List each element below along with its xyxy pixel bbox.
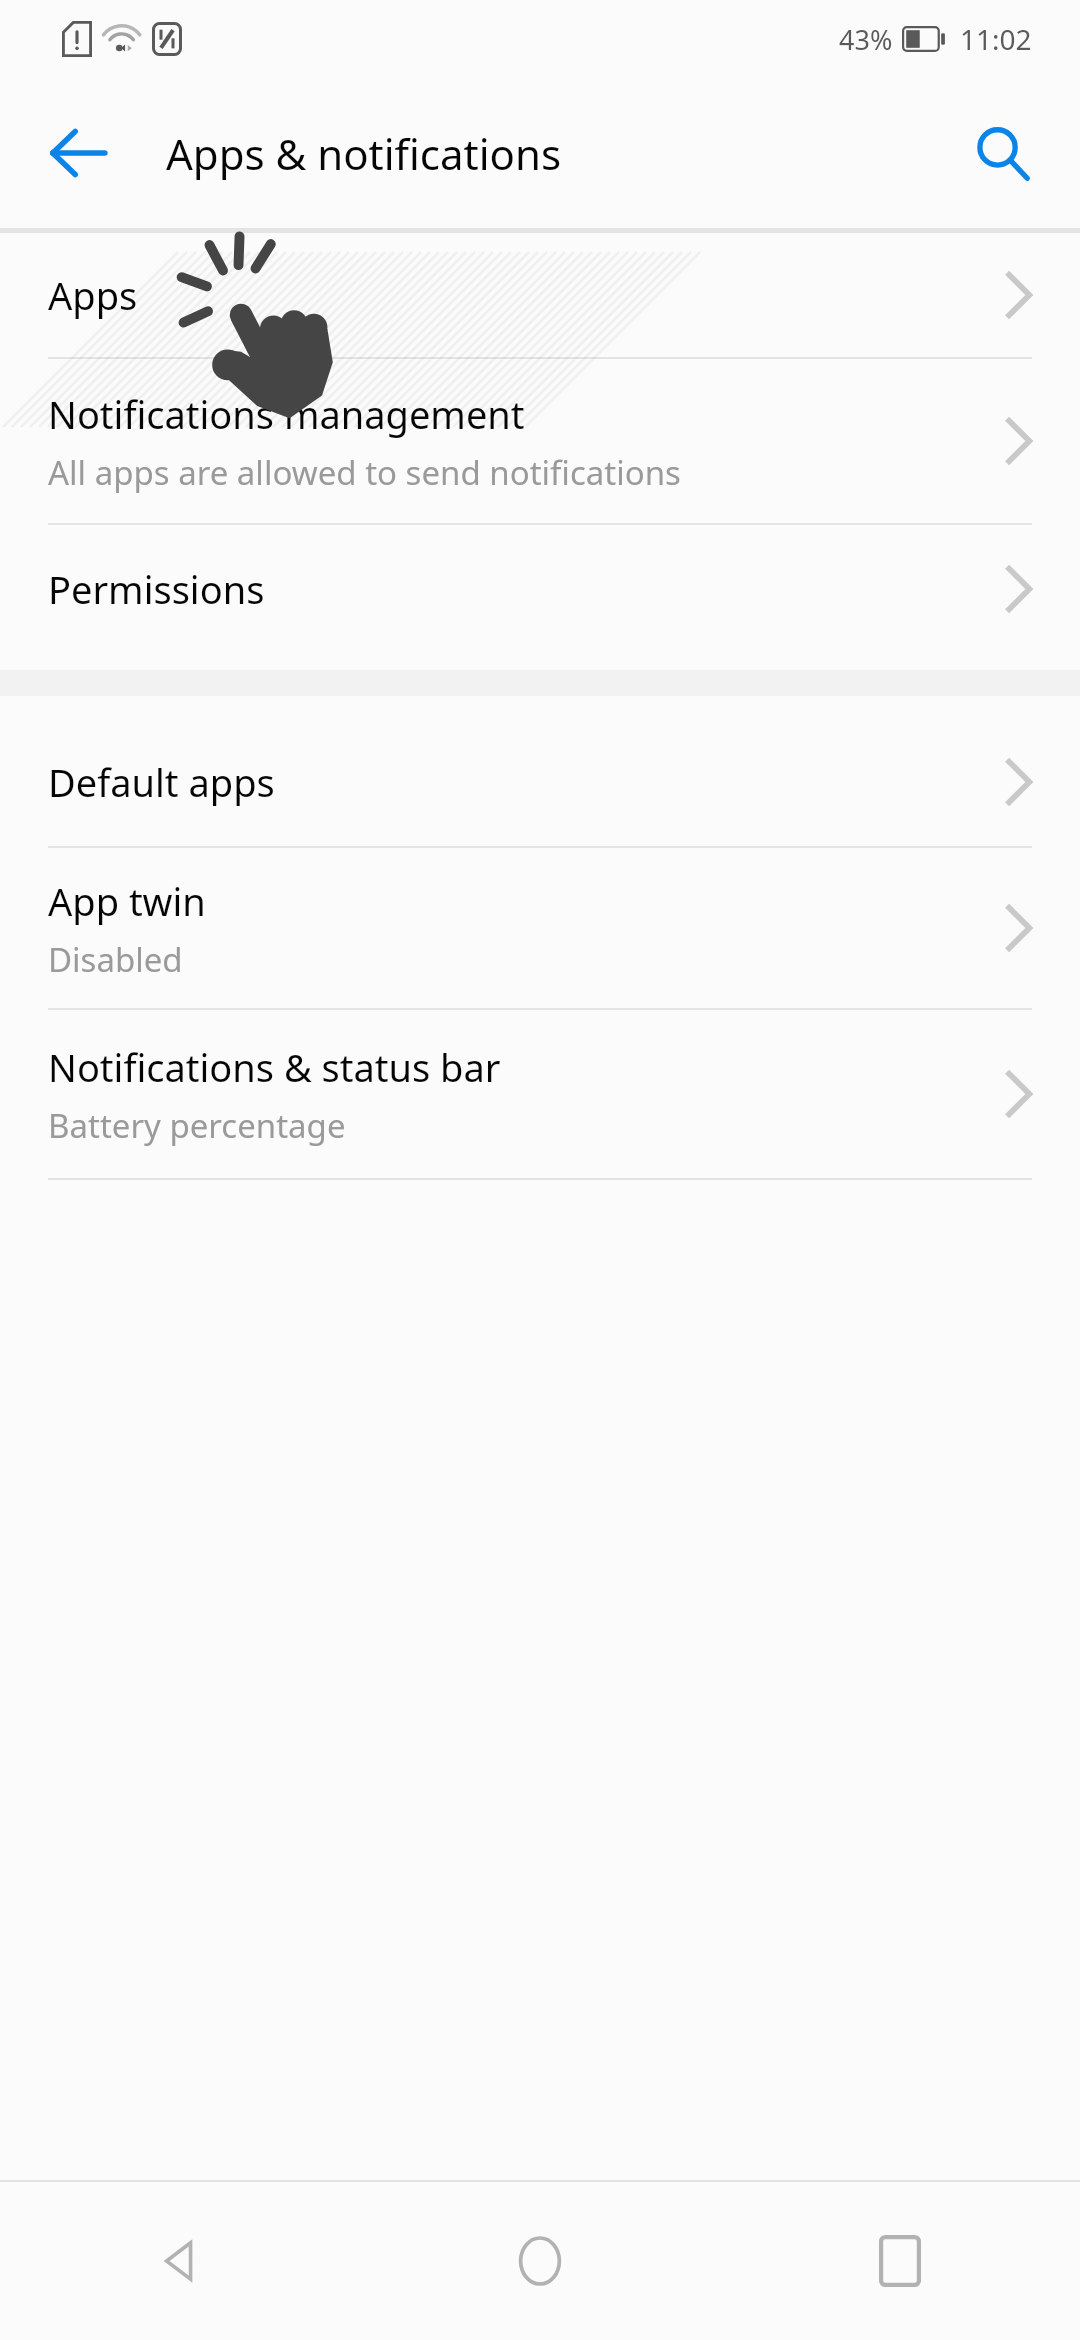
button[interactable]: Home bbox=[360, 2182, 720, 2340]
staticText: Notifications & status bar bbox=[48, 1041, 501, 1093]
staticText: Battery percentage bbox=[48, 1103, 346, 1148]
staticText: 43% bbox=[839, 21, 893, 58]
button[interactable]: Permissions bbox=[0, 525, 1080, 653]
staticText: Apps bbox=[48, 269, 138, 321]
button[interactable]: Notifications management bbox=[0, 359, 1080, 523]
staticText: Permissions bbox=[48, 563, 265, 615]
button[interactable]: Apps bbox=[0, 233, 1080, 357]
staticText: 11:02 bbox=[960, 20, 1032, 58]
staticText: Disabled bbox=[48, 937, 183, 982]
staticText: All apps are allowed to send notificatio… bbox=[48, 450, 681, 495]
button[interactable]: Notifications & status bar bbox=[0, 1010, 1080, 1178]
button[interactable]: Back bbox=[0, 2182, 360, 2340]
button[interactable]: Search bbox=[948, 99, 1056, 207]
staticText: Notifications management bbox=[48, 388, 525, 440]
button[interactable]: Default apps bbox=[0, 718, 1080, 846]
button[interactable]: Back bbox=[24, 99, 132, 207]
staticText: App twin bbox=[48, 875, 206, 927]
staticText: Default apps bbox=[48, 756, 275, 808]
staticText: Apps & notifications bbox=[166, 125, 562, 182]
button[interactable]: App twin bbox=[0, 848, 1080, 1008]
button[interactable]: Recent apps bbox=[720, 2182, 1080, 2340]
